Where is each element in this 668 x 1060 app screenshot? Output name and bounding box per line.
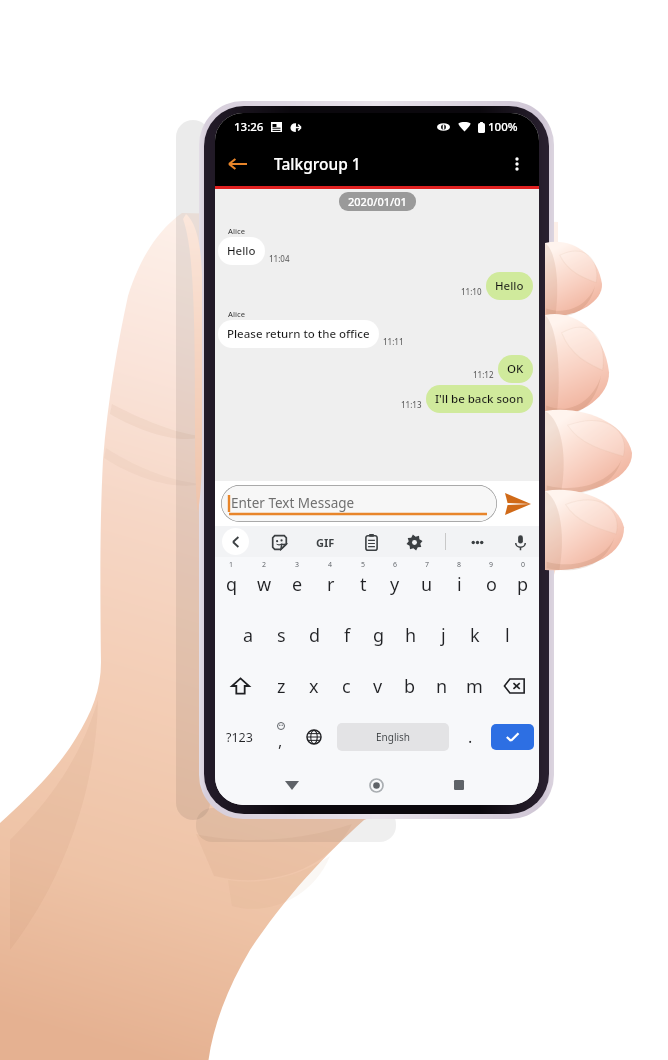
button[interactable]: Microphone [508,530,532,554]
button[interactable]: Recents [445,771,473,799]
staticText: Hello [495,278,524,294]
staticText: e [292,572,303,597]
button[interactable]: Comma [264,716,297,758]
button[interactable]: Language [297,716,330,758]
button[interactable]: x [298,666,330,706]
button[interactable]: 6 [379,557,411,609]
button[interactable]: j [427,615,459,655]
button[interactable]: English [337,723,449,751]
button[interactable]: GIF [310,527,340,557]
button[interactable]: c [330,666,362,706]
staticText: 7 [425,560,430,570]
staticText: q [226,572,238,597]
staticText: f [344,623,351,648]
button[interactable]: f [331,615,363,655]
button[interactable]: Hello [486,272,533,300]
staticText: g [373,623,385,648]
staticText: 11:12 [473,369,494,380]
button[interactable]: Enter Text Message [221,485,497,522]
button[interactable]: Send [497,481,539,526]
button[interactable]: k [459,615,491,655]
staticText: j [441,623,446,648]
staticText: . [468,726,473,748]
button[interactable]: Please return to the office [218,320,379,348]
staticText: 100% [488,119,518,135]
button[interactable]: v [362,666,394,706]
staticText: Alice [228,226,245,236]
staticText: c [342,674,351,699]
staticText: 5 [361,560,366,570]
staticText: Hello [227,243,256,259]
button[interactable]: g [363,615,395,655]
button[interactable]: Back [278,771,306,799]
button[interactable]: s [265,615,298,655]
staticText: I'll be back soon [435,391,524,407]
staticText: y [390,572,400,597]
button[interactable]: h [395,615,427,655]
button[interactable]: ?123 [215,716,264,758]
staticText: o [486,572,497,597]
button[interactable]: Enter [491,724,534,750]
staticText: r [327,572,335,597]
button[interactable]: 7 [411,557,443,609]
button[interactable]: Clipboard [359,530,383,554]
button[interactable]: More options [495,142,539,186]
button[interactable]: I'll be back soon [426,385,533,413]
staticText: w [257,572,272,597]
staticText: a [243,623,254,648]
staticText: 11:04 [269,253,290,264]
staticText: l [505,623,510,648]
staticText: 2 [262,560,267,570]
button[interactable]: Shift [215,666,265,706]
button[interactable]: 0 [507,557,539,609]
button[interactable]: Backspace [490,666,539,706]
button[interactable]: 3 [281,557,314,609]
staticText: k [470,623,480,648]
button[interactable]: l [491,615,523,655]
button[interactable]: . [451,716,490,758]
button[interactable]: OK [498,355,533,383]
button[interactable]: More [465,530,489,554]
staticText: ?123 [226,729,253,746]
staticText: Alice [228,309,245,319]
staticText: 1 [229,560,234,570]
button[interactable]: Back [215,142,259,186]
button[interactable]: Settings [402,530,426,554]
staticText: Enter Text Message [231,494,355,512]
button[interactable]: a [232,615,265,655]
staticText: 9 [489,560,494,570]
staticText: 11:11 [383,336,404,347]
button[interactable]: Home [362,771,390,799]
staticText: 13:26 [234,119,264,135]
button[interactable]: 8 [443,557,475,609]
button[interactable]: z [265,666,298,706]
button[interactable]: 4 [314,557,347,609]
button[interactable]: d [298,615,331,655]
button[interactable]: Hello [218,237,265,265]
staticText: Talkgroup 1 [274,153,361,174]
staticText: 6 [393,560,398,570]
button[interactable]: 1 [215,557,248,609]
button[interactable]: b [394,666,426,706]
staticText: 2020/01/01 [348,194,407,209]
button[interactable]: Emoji [267,530,291,554]
staticText: b [404,674,416,699]
staticText: 4 [328,560,333,570]
button[interactable]: 2 [248,557,281,609]
staticText: i [457,572,462,597]
staticText: 3 [295,560,300,570]
staticText: p [517,572,529,597]
staticText: Please return to the office [227,326,370,342]
staticText: 11:13 [401,399,422,410]
button[interactable]: m [458,666,490,706]
staticText: u [421,572,433,597]
staticText: English [376,730,411,744]
button[interactable]: 5 [347,557,379,609]
button[interactable]: 9 [475,557,507,609]
staticText: OK [507,361,524,377]
staticText: 8 [457,560,462,570]
button[interactable]: n [426,666,458,706]
button[interactable]: Back [222,528,249,555]
staticText: s [277,623,286,648]
staticText: x [309,674,319,699]
